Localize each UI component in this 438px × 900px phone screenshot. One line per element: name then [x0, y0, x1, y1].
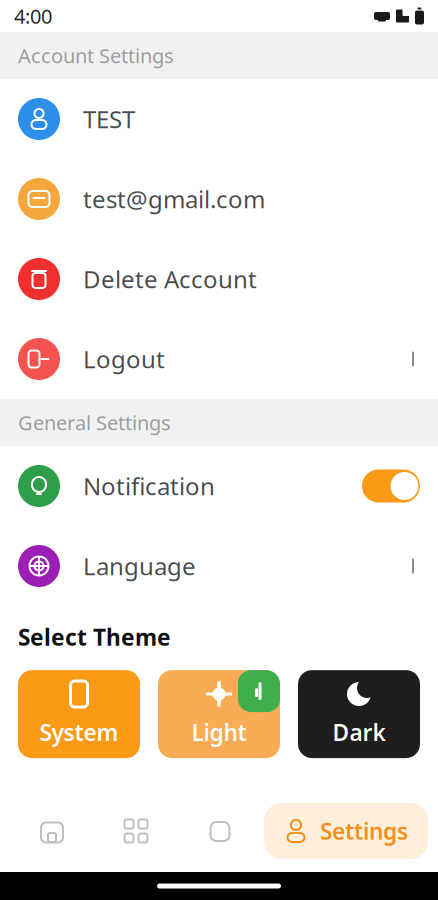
staticText: Notification	[83, 470, 215, 502]
staticText: TEST	[83, 103, 135, 135]
button[interactable]: Language	[0, 526, 438, 606]
staticText: Language	[83, 550, 196, 582]
staticText: Delete Account	[83, 263, 257, 295]
staticText: General Settings	[18, 409, 171, 436]
button[interactable]: Notification	[0, 446, 438, 526]
staticText: Account Settings	[18, 42, 174, 69]
staticText: Logout	[83, 343, 165, 375]
button[interactable]: Light	[158, 670, 280, 758]
button[interactable]: TEST	[0, 79, 438, 159]
button[interactable]: Delete Account	[0, 239, 438, 319]
button[interactable]: Logout	[0, 319, 438, 399]
button[interactable]: Categories	[94, 796, 178, 866]
staticText: Light	[191, 717, 246, 747]
staticText: 4:00	[14, 3, 52, 29]
staticText: Settings	[320, 816, 408, 846]
button[interactable]: System	[18, 670, 140, 758]
staticText: System	[39, 717, 118, 747]
button[interactable]: Dark	[298, 670, 420, 758]
button[interactable]: test@gmail.com	[0, 159, 438, 239]
staticText: Dark	[332, 717, 385, 747]
button[interactable]: Settings	[264, 803, 428, 859]
staticText: test@gmail.com	[83, 183, 265, 215]
staticText: Select Theme	[18, 622, 171, 652]
button[interactable]: Favorites	[178, 796, 262, 866]
button[interactable]: Home	[10, 796, 94, 866]
